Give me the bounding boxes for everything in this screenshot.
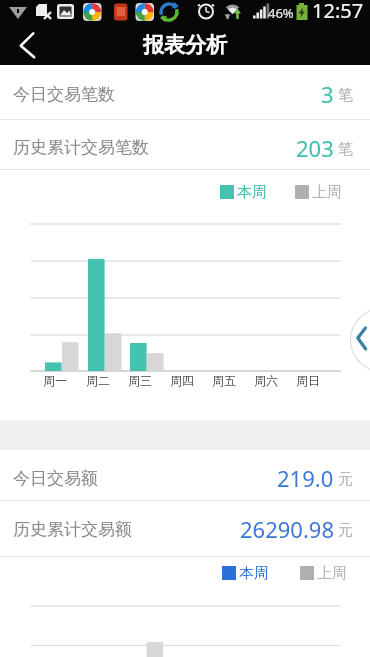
staticText: 3	[321, 79, 334, 109]
button[interactable]	[0, 24, 50, 65]
staticText: 周三	[128, 373, 152, 388]
staticText: 周四	[170, 373, 194, 388]
staticText: 周六	[254, 373, 278, 388]
staticText: 本周	[239, 564, 269, 583]
button[interactable]: 历史累计交易额	[0, 500, 370, 556]
button[interactable]	[345, 303, 370, 379]
staticText: 12:57	[312, 0, 364, 24]
staticText: 今日交易额	[13, 468, 98, 489]
staticText: 历史累计交易额	[13, 519, 132, 540]
button[interactable]: 今日交易额	[0, 450, 370, 500]
staticText: 26290.98	[240, 514, 334, 544]
staticText: 203	[296, 133, 334, 163]
staticText: 历史累计交易笔数	[13, 137, 149, 158]
staticText: 元	[338, 521, 353, 540]
staticText: 元	[338, 470, 353, 489]
staticText: 上周	[317, 564, 347, 583]
staticText: 219.0	[277, 463, 334, 493]
staticText: 周二	[86, 373, 110, 388]
staticText: 周一	[43, 373, 67, 388]
staticText: 46%	[268, 4, 294, 22]
staticText: 本周	[237, 183, 267, 202]
staticText: 笔	[338, 140, 353, 159]
staticText: 上周	[312, 183, 342, 202]
staticText: 周日	[296, 373, 320, 388]
staticText: 报表分析	[143, 32, 227, 58]
staticText: 笔	[338, 86, 353, 105]
button[interactable]: 历史累计交易笔数	[0, 119, 370, 170]
button[interactable]: 今日交易笔数	[0, 65, 370, 119]
staticText: 周五	[212, 373, 236, 388]
staticText: 今日交易笔数	[13, 84, 115, 105]
